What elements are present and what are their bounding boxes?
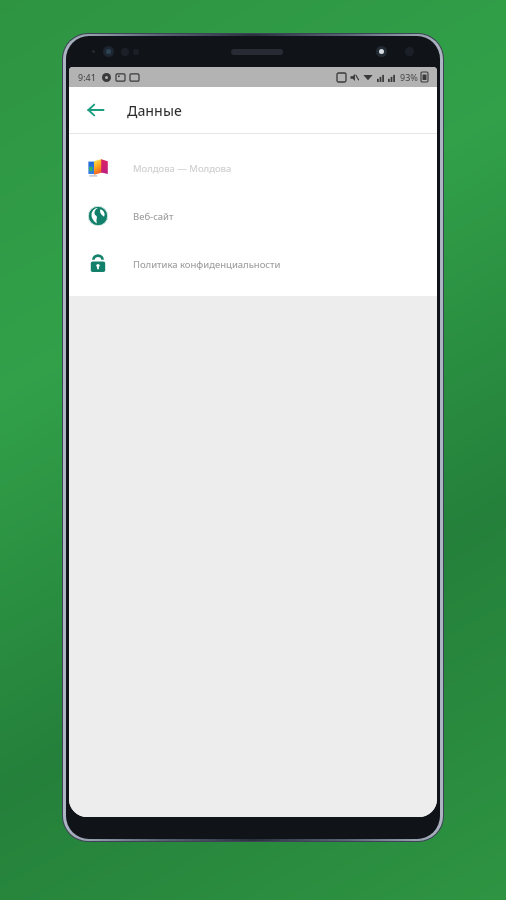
staticText: 9:41 bbox=[78, 71, 96, 83]
staticText: Политика конфиденциальности bbox=[133, 258, 281, 271]
button[interactable]: Веб-сайт bbox=[69, 192, 437, 240]
staticText: 93% bbox=[400, 71, 418, 83]
button[interactable]: Молдова — Молдова bbox=[69, 144, 437, 192]
staticText: Данные bbox=[127, 101, 182, 120]
button[interactable]: Политика конфиденциальности bbox=[69, 240, 437, 288]
staticText: Молдова — Молдова bbox=[133, 162, 232, 175]
button[interactable]: Back bbox=[77, 91, 115, 129]
staticText: Веб-сайт bbox=[133, 210, 174, 223]
